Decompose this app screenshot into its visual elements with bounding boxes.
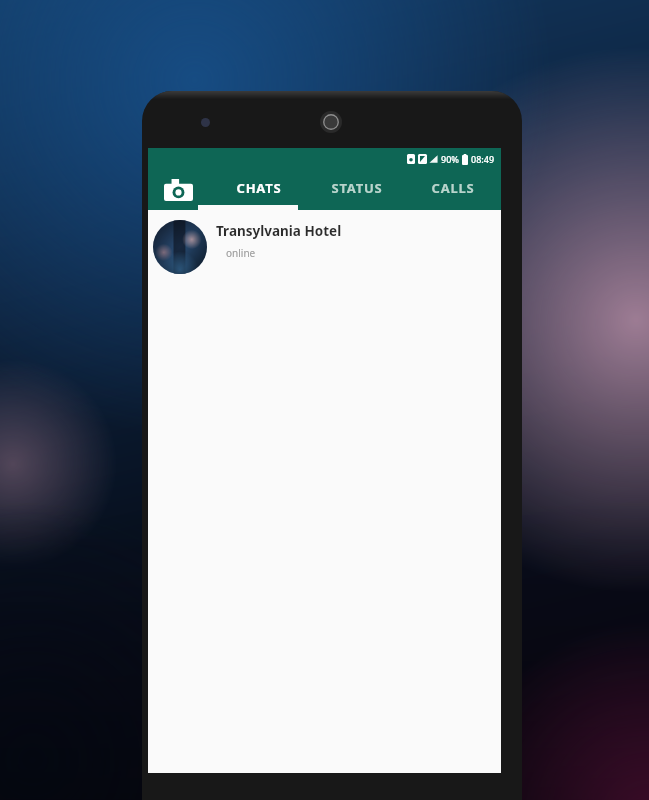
- button[interactable]: CALLS: [405, 169, 501, 210]
- staticText: Transylvania Hotel: [216, 222, 342, 240]
- staticText: CHATS: [236, 179, 282, 197]
- button[interactable]: Transylvania Hotel: [148, 210, 501, 280]
- button[interactable]: Camera: [148, 169, 208, 210]
- button[interactable]: STATUS: [309, 169, 405, 210]
- staticText: 08:49: [471, 153, 495, 165]
- staticText: 90%: [441, 153, 459, 165]
- button[interactable]: CHATS: [208, 169, 309, 210]
- staticText: STATUS: [331, 179, 383, 197]
- staticText: CALLS: [431, 179, 475, 197]
- staticText: online: [226, 246, 256, 260]
